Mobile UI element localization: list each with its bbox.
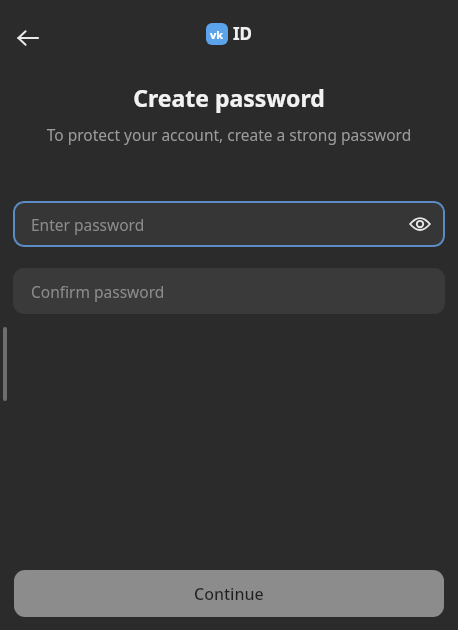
staticText: ID bbox=[233, 22, 253, 45]
staticText: Confirm password bbox=[31, 281, 165, 302]
button[interactable]: Enter password bbox=[13, 201, 445, 247]
button[interactable]: Continue bbox=[14, 570, 444, 617]
button[interactable]: Confirm password bbox=[13, 268, 445, 314]
staticText: Create password bbox=[133, 82, 325, 113]
staticText: vk bbox=[210, 27, 224, 42]
button[interactable]: Show password bbox=[403, 207, 437, 241]
staticText: Continue bbox=[194, 583, 264, 605]
button[interactable]: Back bbox=[8, 18, 48, 58]
staticText: To protect your account, create a strong… bbox=[34, 124, 424, 145]
staticText: Enter password bbox=[31, 214, 145, 235]
